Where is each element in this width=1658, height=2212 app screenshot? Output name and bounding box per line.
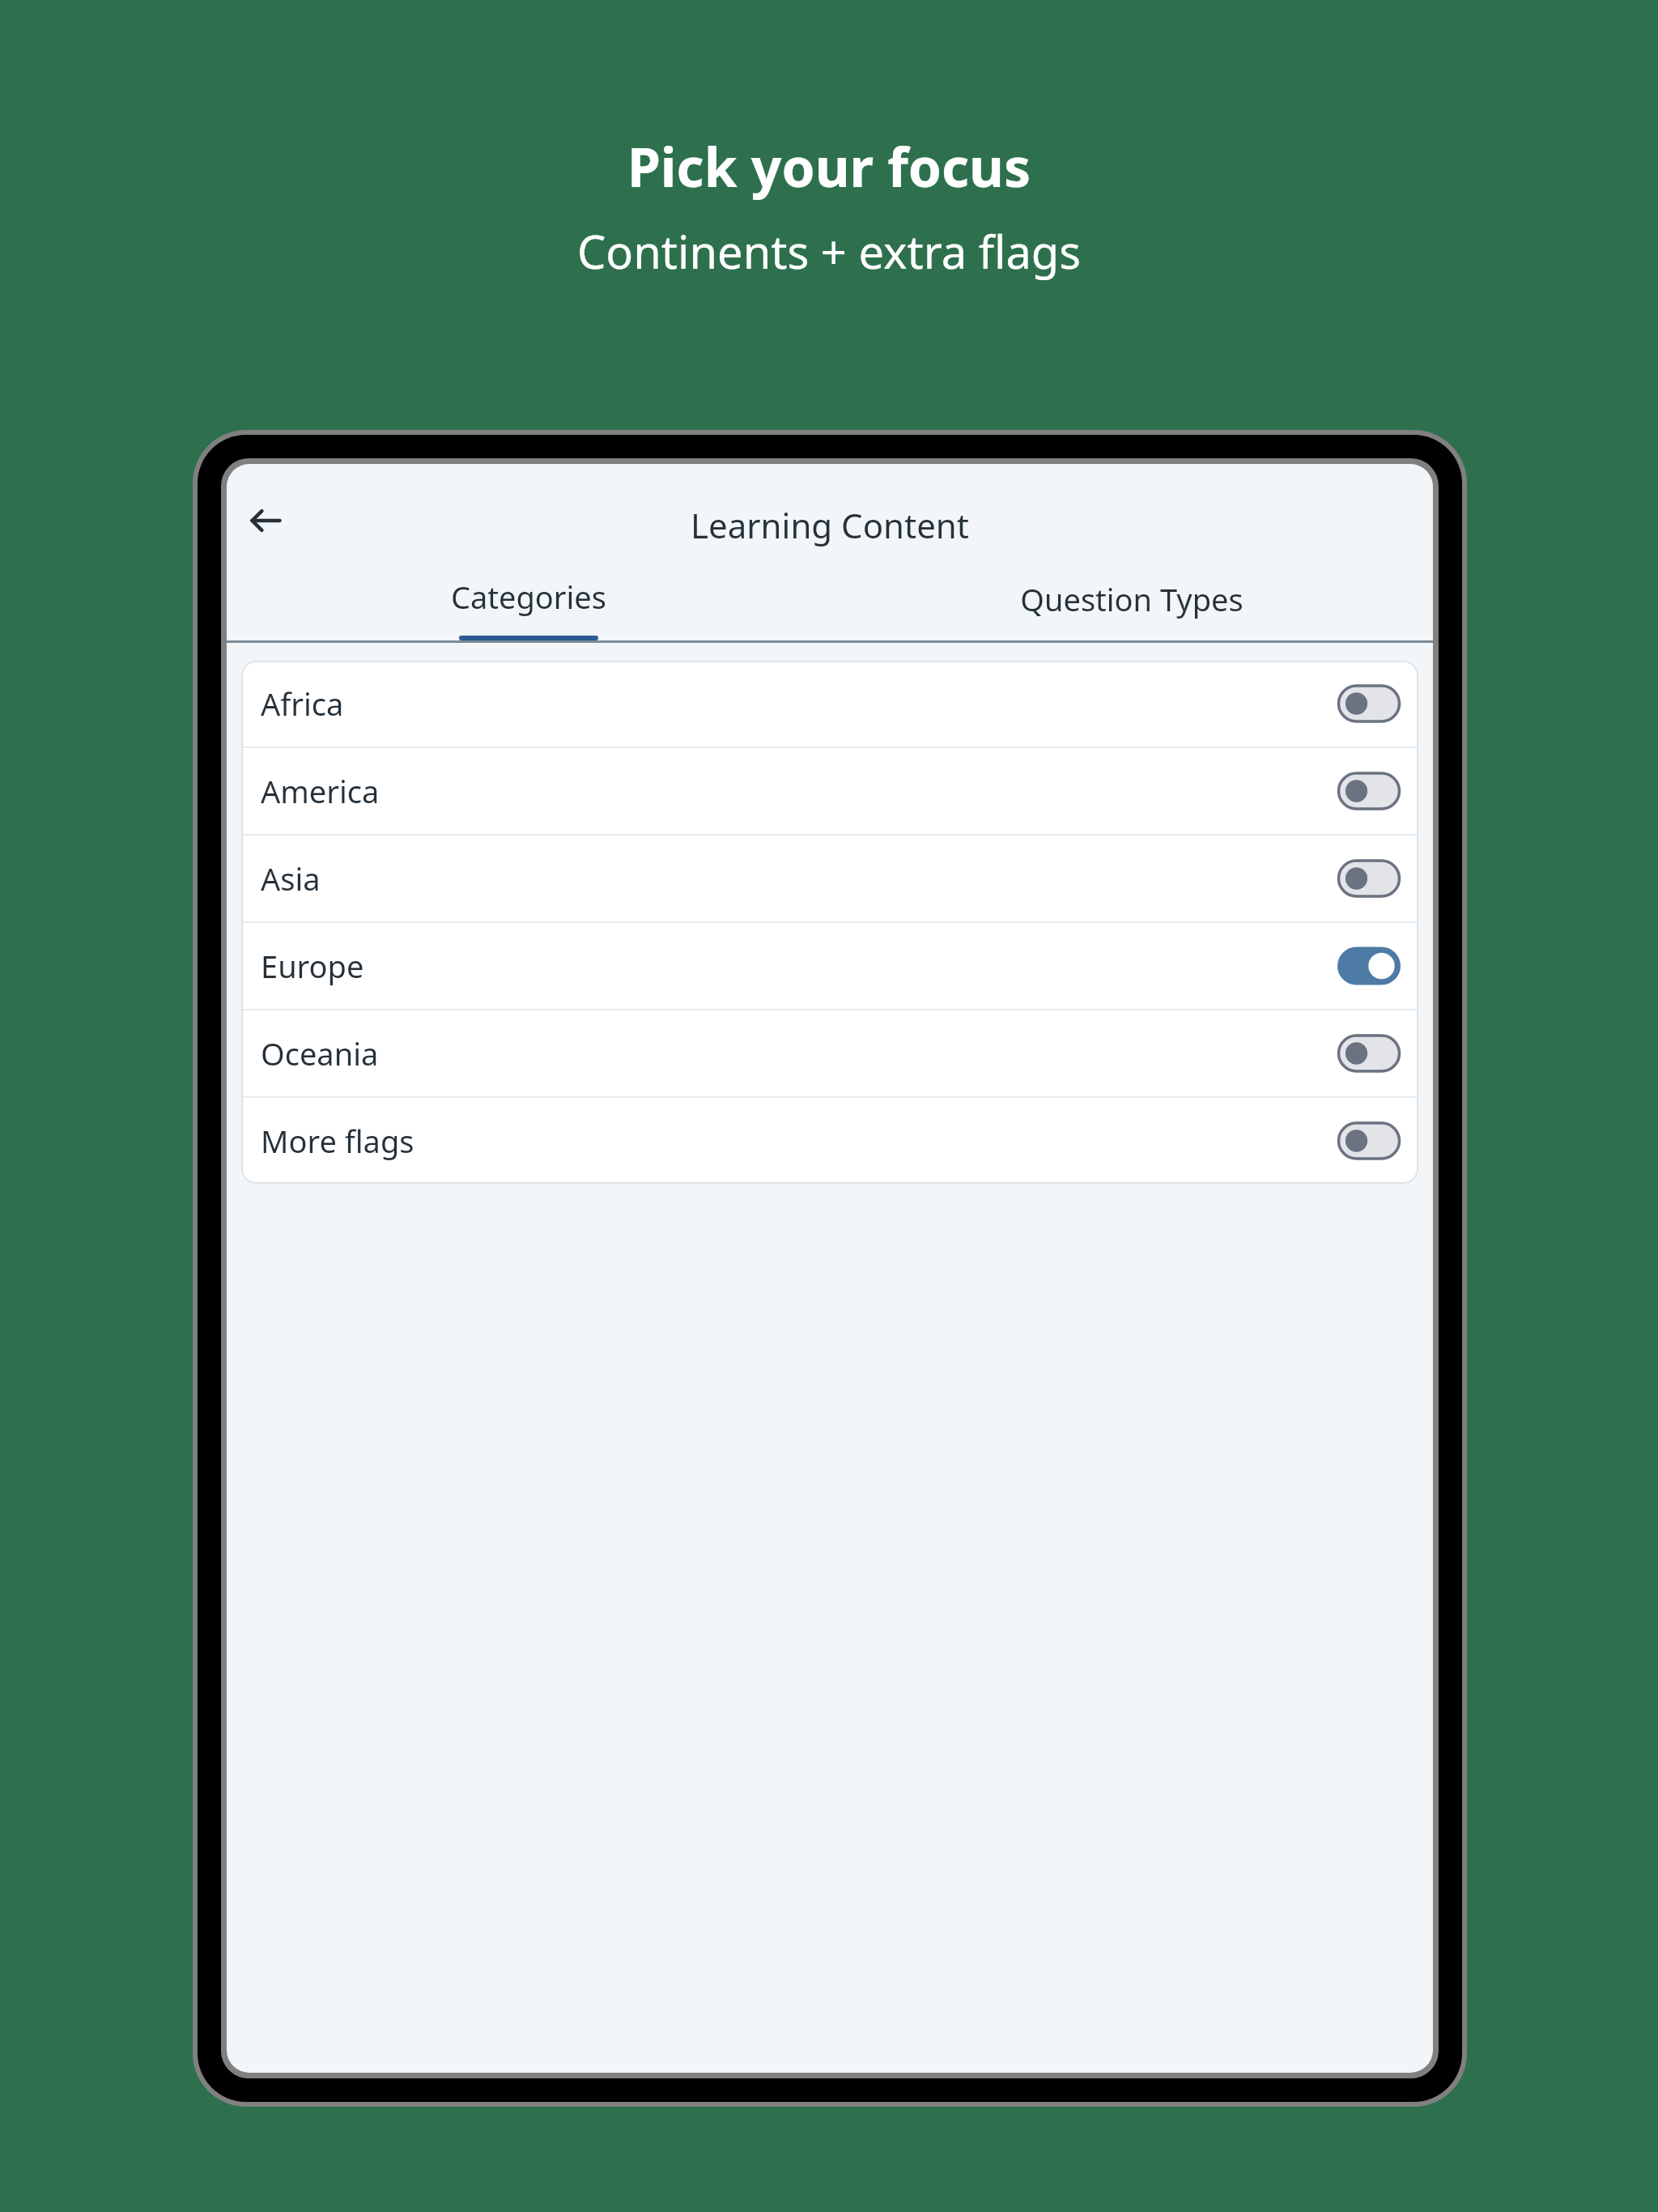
staticText: Asia xyxy=(261,857,1337,900)
staticText: Learning Content xyxy=(227,502,1433,548)
button[interactable]: More flags xyxy=(241,1098,1418,1184)
button[interactable]: Europe xyxy=(241,923,1418,1009)
staticText: More flags xyxy=(261,1120,1337,1162)
button[interactable]: Africa xyxy=(241,661,1418,747)
staticText: Continents + extra flags xyxy=(0,220,1658,282)
button[interactable]: Oceania xyxy=(241,1010,1418,1096)
button[interactable]: America xyxy=(241,748,1418,834)
staticText: Oceania xyxy=(261,1032,1337,1074)
button[interactable]: Categories xyxy=(227,555,830,640)
button[interactable]: Toggle Oceania xyxy=(1337,1033,1401,1074)
button[interactable]: Toggle More flags xyxy=(1337,1121,1401,1161)
staticText: Question Types xyxy=(1020,578,1243,620)
button[interactable]: Question Types xyxy=(830,555,1433,640)
staticText: Categories xyxy=(451,576,606,618)
button[interactable]: Toggle Africa xyxy=(1337,683,1401,724)
staticText: Europe xyxy=(261,945,1337,987)
button[interactable]: Toggle America xyxy=(1337,771,1401,811)
staticText: Africa xyxy=(261,683,1337,725)
staticText: Pick your focus xyxy=(0,130,1658,202)
button[interactable]: Toggle Europe xyxy=(1337,946,1401,986)
button[interactable]: Back xyxy=(236,491,295,550)
button[interactable]: Toggle Asia xyxy=(1337,858,1401,899)
staticText: America xyxy=(261,770,1337,812)
button[interactable]: Asia xyxy=(241,836,1418,921)
